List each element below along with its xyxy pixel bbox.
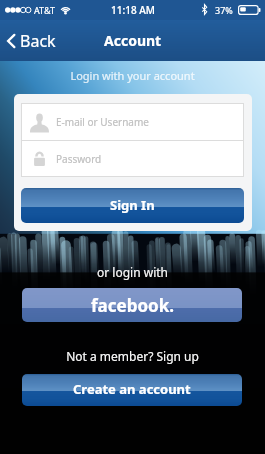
staticText: Password [56,152,102,166]
staticText: Sign In [110,196,155,214]
staticText: or login with [0,264,265,280]
staticText: Account [104,31,162,50]
button[interactable]: Create an account [22,374,242,406]
staticText: Login with your account [0,68,265,83]
staticText: AT&T [34,4,55,16]
button[interactable]: Password [22,141,243,176]
button[interactable]: Back [0,23,64,59]
button[interactable]: E-mail or Username [22,104,243,140]
button[interactable]: Sign In [21,188,244,223]
staticText: Create an account [73,380,191,398]
staticText: Back [20,30,56,52]
staticText: 11:18 AM [111,3,155,17]
staticText: E-mail or Username [56,115,149,129]
staticText: facebook. [91,294,174,317]
staticText: Not a member? Sign up [0,348,265,364]
button[interactable]: facebook. [22,288,242,322]
staticText: 37% [215,4,233,16]
